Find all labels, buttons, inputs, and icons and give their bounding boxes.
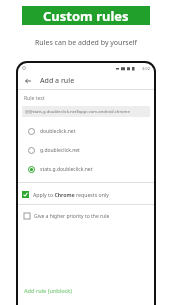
staticText: 3:02 (142, 66, 150, 71)
button[interactable]: Give a higher priority to the rule (18, 210, 154, 222)
staticText: Custom rules (43, 7, 129, 25)
staticText: g.doubleclick.net (40, 147, 80, 154)
button[interactable]: stats.g.doubleclick.net (22, 162, 150, 176)
button[interactable]: Add rule (unblock) (18, 283, 154, 305)
button[interactable]: @@stats.g.doubleclick.net$app=com.androi… (22, 106, 150, 117)
button[interactable]: Apply to Chrome requests only (18, 188, 154, 200)
staticText: Add a rule (40, 76, 75, 86)
staticText: @@stats.g.doubleclick.net$app=com.androi… (25, 109, 130, 115)
button[interactable]: Back (23, 76, 33, 86)
staticText: stats.g.doubleclick.net (40, 166, 93, 173)
staticText: Add rule (unblock) (24, 287, 72, 295)
staticText: Rules can be added by yourself (35, 38, 137, 48)
staticText: Give a higher priority to the rule (34, 213, 110, 220)
staticText: doubleclick.net (40, 128, 76, 135)
staticText: Apply to Chrome requests only (33, 191, 109, 198)
staticText: Rule text (24, 95, 45, 102)
button[interactable]: g.doubleclick.net (22, 143, 150, 157)
button[interactable]: doubleclick.net (22, 124, 150, 138)
